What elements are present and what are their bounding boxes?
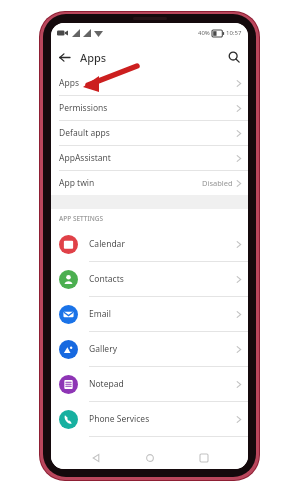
staticText: 40% [198, 29, 210, 37]
button[interactable]: Default apps [51, 121, 248, 145]
staticText: Calendar [89, 238, 125, 250]
staticText: AppAssistant [59, 152, 111, 164]
button[interactable]: Search [220, 43, 248, 71]
staticText: Permissions [59, 102, 108, 114]
button[interactable]: AppAssistant [51, 146, 248, 170]
staticText: Email [89, 308, 111, 320]
staticText: Contacts [89, 273, 124, 285]
button[interactable]: Back [51, 44, 77, 70]
button[interactable]: Email [51, 297, 248, 331]
button[interactable]: Recent apps [184, 447, 224, 469]
button[interactable]: Apps [51, 71, 248, 95]
staticText: Default apps [59, 127, 110, 139]
staticText: Apps [59, 77, 79, 89]
staticText: App twin [59, 177, 95, 189]
staticText: Apps [80, 50, 107, 65]
button[interactable]: Phone Services [51, 402, 248, 436]
staticText: APP SETTINGS [59, 214, 104, 223]
staticText: Phone Services [89, 413, 150, 425]
button[interactable]: Calendar [51, 227, 248, 261]
staticText: Gallery [89, 343, 117, 355]
staticText: Notepad [89, 378, 124, 390]
button[interactable]: Back [76, 447, 116, 469]
staticText: Disabled [202, 178, 233, 188]
staticText: 10:57 [226, 29, 242, 37]
button[interactable]: App twin [51, 171, 248, 195]
button[interactable]: Notepad [51, 367, 248, 401]
button[interactable]: Permissions [51, 96, 248, 120]
button[interactable]: Home [130, 447, 170, 469]
button[interactable]: Contacts [51, 262, 248, 296]
button[interactable]: Gallery [51, 332, 248, 366]
